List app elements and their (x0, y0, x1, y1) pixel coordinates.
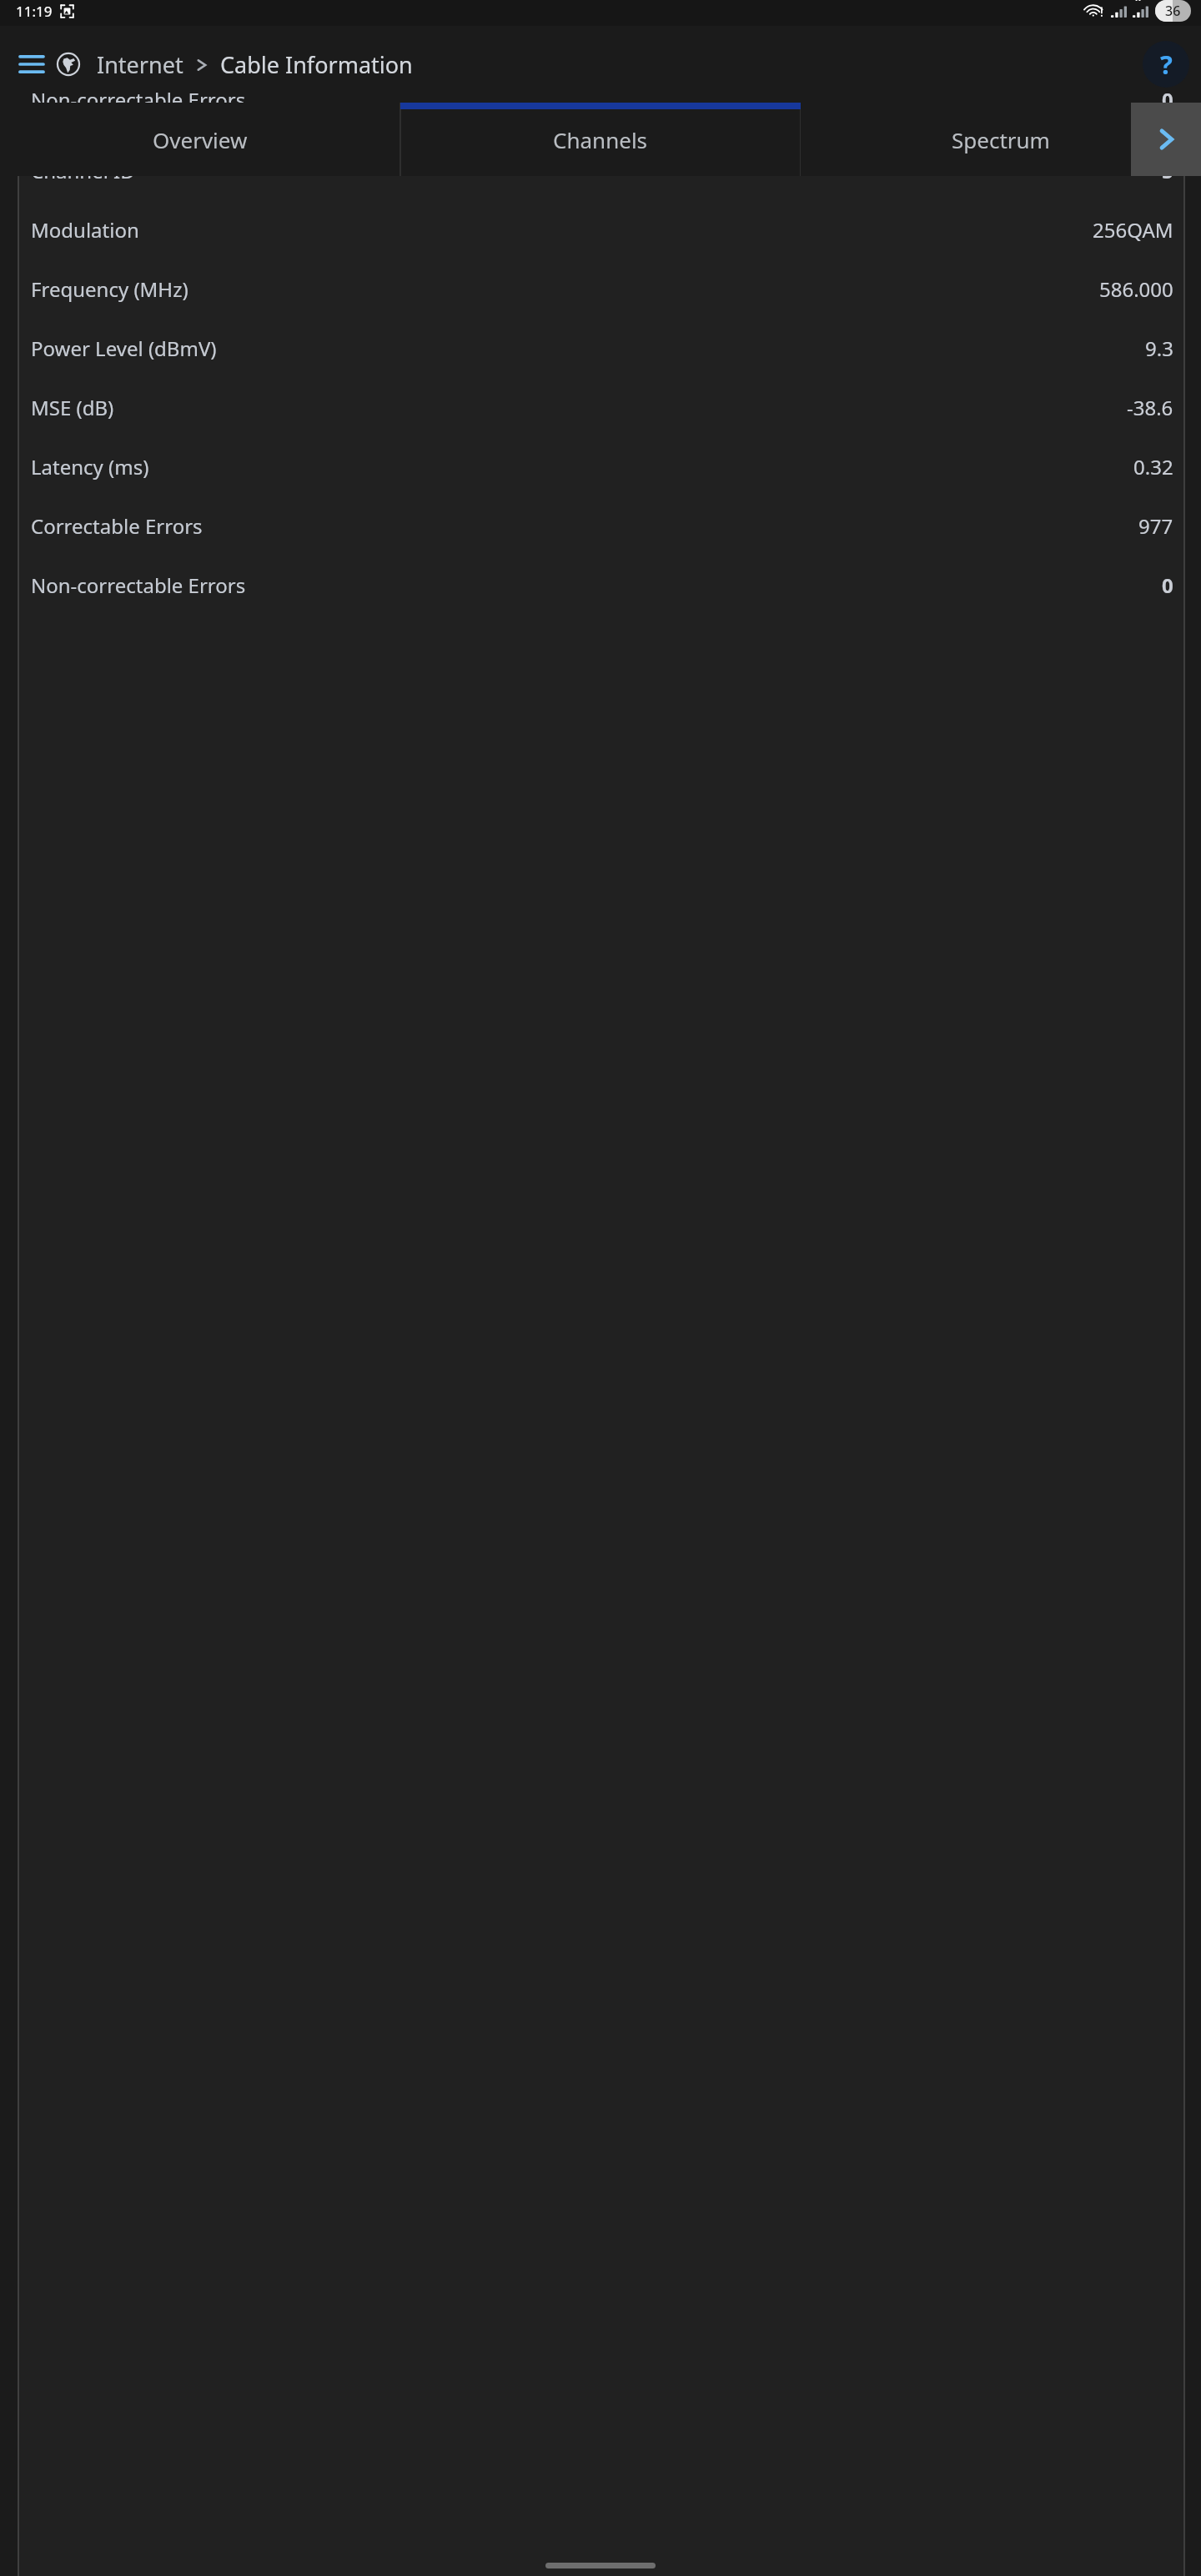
button[interactable]: Internet (97, 49, 1143, 80)
button[interactable]: Overview (0, 103, 400, 176)
staticText: Cable Information (220, 49, 413, 80)
button[interactable]: Correctable Errors (18, 496, 1184, 556)
staticText: 586.000 (1099, 275, 1173, 303)
button[interactable]: Modulation (18, 200, 1184, 259)
staticText: MSE (dB) (31, 394, 114, 421)
button[interactable]: Non-correctable Errors (18, 81, 1184, 118)
button[interactable]: Spectrum (801, 103, 1201, 176)
staticText: Non-correctable Errors (31, 86, 246, 113)
button[interactable]: MSE (dB) (18, 378, 1184, 437)
staticText: 0.32 (1133, 453, 1173, 480)
staticText: -38.6 (1127, 394, 1173, 421)
staticText: Frequency (MHz) (31, 275, 188, 303)
staticText: Power Level (dBmV) (31, 335, 217, 362)
button[interactable]: Menu (12, 44, 52, 84)
staticText: Channels (553, 125, 648, 154)
staticText: 36 (1165, 2, 1181, 20)
staticText: Channel ID (31, 157, 135, 184)
button[interactable]: More tabs (1131, 103, 1201, 176)
button[interactable]: Frequency (MHz) (18, 259, 1184, 319)
staticText: 5 (1162, 157, 1173, 184)
staticText: ? (1160, 47, 1173, 82)
staticText: Spectrum (952, 125, 1050, 154)
staticText: Internet (97, 49, 183, 80)
staticText: 977 (1138, 512, 1173, 540)
staticText: 256QAM (1093, 216, 1173, 244)
button[interactable]: Latency (ms) (18, 437, 1184, 496)
staticText: Modulation (31, 216, 139, 244)
staticText: 9.3 (1145, 335, 1173, 362)
staticText: 0 (1162, 571, 1173, 599)
staticText: 11:19 (16, 2, 53, 21)
staticText: Non-correctable Errors (31, 571, 246, 599)
staticText: Correctable Errors (31, 512, 203, 540)
staticText: R (1135, 0, 1141, 3)
staticText: Latency (ms) (31, 453, 149, 480)
button[interactable]: Non-correctable Errors (18, 556, 1184, 615)
button[interactable]: Channel ID (18, 141, 1184, 200)
button[interactable]: Channels (400, 103, 801, 176)
staticText: 0 (1162, 86, 1173, 113)
staticText: Overview (153, 125, 248, 154)
button[interactable]: Power Level (dBmV) (18, 319, 1184, 378)
button[interactable]: Help (1143, 41, 1189, 88)
